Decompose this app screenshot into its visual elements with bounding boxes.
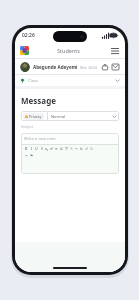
staticText: x₂ (45, 146, 49, 151)
button[interactable]: Format S (39, 145, 44, 152)
staticText: U (35, 146, 38, 151)
staticText: S (41, 146, 43, 151)
staticText: Write a new note (24, 136, 56, 141)
button[interactable]: Profile photo (20, 62, 30, 72)
staticText: Class (28, 78, 39, 84)
button[interactable]: Format ≣ (59, 145, 64, 152)
staticText: ≡ (55, 147, 59, 151)
staticText: Message (21, 95, 56, 106)
button[interactable]: Format x₂ (44, 145, 49, 152)
button[interactable]: Format T! (64, 145, 69, 152)
staticText: x² (50, 146, 54, 151)
button[interactable]: Format ✂ (74, 145, 79, 152)
button[interactable]: Messages (110, 62, 120, 72)
button[interactable]: Menu (109, 45, 120, 56)
button[interactable]: Format x² (49, 145, 54, 152)
staticText: Abegunde Adeyemi (33, 64, 78, 70)
staticText: ✂ (75, 147, 79, 151)
staticText: ✂ (25, 154, 29, 158)
staticText: ⚑ (30, 154, 34, 158)
staticText: Mar 2024 (80, 65, 97, 70)
staticText: Subject (21, 124, 34, 129)
button[interactable]: Format U (34, 145, 39, 152)
button[interactable]: Format ↺ (84, 145, 89, 152)
staticText: B (25, 146, 28, 151)
staticText: 02:26 (22, 32, 35, 39)
button[interactable]: Write a new note (21, 133, 119, 144)
button[interactable]: Format ✎ (69, 145, 74, 152)
staticText: Students (57, 47, 80, 54)
staticText: ↻ (90, 147, 94, 151)
button[interactable]: Class (15, 75, 125, 86)
button[interactable]: Format ↻ (89, 145, 94, 152)
button[interactable]: Privacy (21, 111, 119, 121)
staticText: I (31, 146, 33, 151)
staticText: ≣ (60, 147, 64, 151)
staticText: Privacy (29, 114, 42, 119)
button[interactable]: Format ✂ (24, 152, 29, 159)
staticText: ⧉ (80, 147, 83, 151)
staticText: T! (65, 146, 69, 151)
button[interactable]: Format ⚑ (29, 152, 34, 159)
button[interactable]: App logo (20, 46, 29, 55)
staticText: ↺ (85, 147, 89, 151)
staticText: Normal (51, 114, 66, 119)
button[interactable]: Bag (100, 62, 110, 72)
staticText: ✎ (70, 147, 74, 151)
button[interactable]: Format I (29, 145, 34, 152)
button[interactable]: Format B (24, 145, 29, 152)
button[interactable]: Format ⧉ (79, 145, 84, 152)
button[interactable]: Format ≡ (54, 145, 59, 152)
